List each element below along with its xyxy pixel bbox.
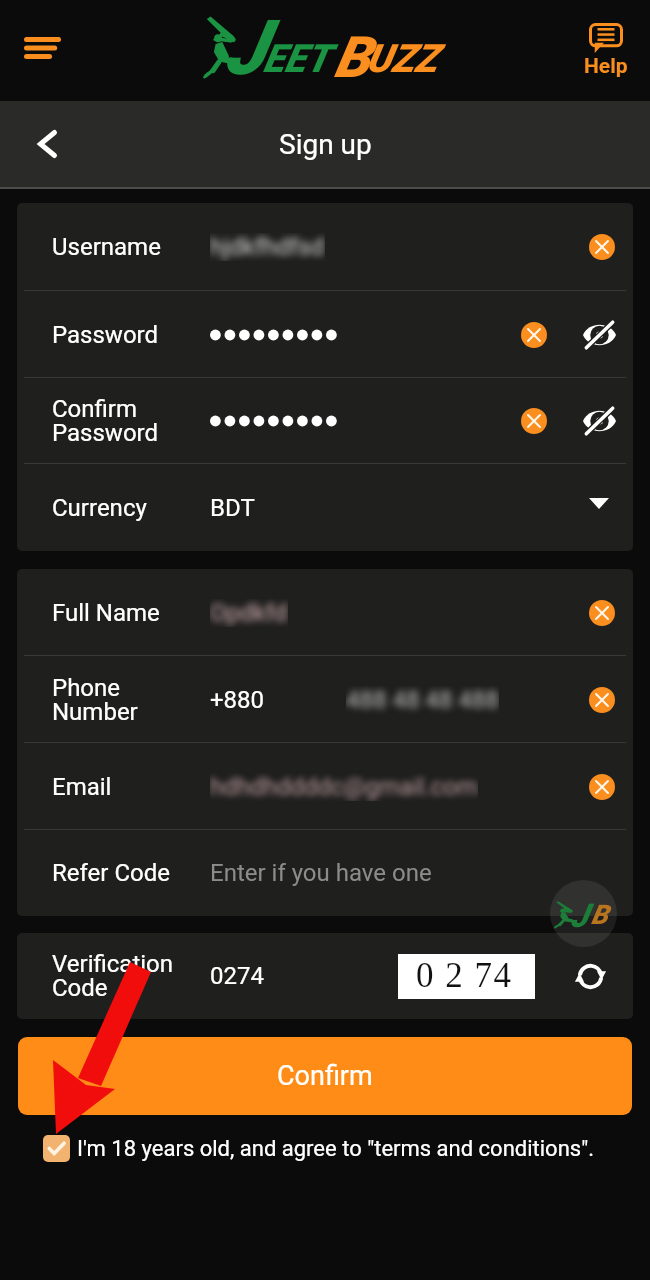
- staticText: hjdkfhdfsd: [210, 233, 325, 261]
- button[interactable]: Verification Code: [17, 933, 633, 1019]
- button[interactable]: I'm 18 years old, and agree to "terms an…: [43, 1135, 650, 1162]
- staticText: 0274: [210, 962, 264, 990]
- button[interactable]: Show password: [579, 315, 619, 355]
- staticText: Email: [52, 773, 112, 801]
- staticText: UZZ: [366, 36, 438, 82]
- button[interactable]: Clear: [517, 404, 551, 438]
- staticText: Opdkfd: [210, 599, 288, 627]
- staticText: Refer Code: [52, 859, 170, 887]
- staticText: hdhdhddddc@gmail.com: [210, 773, 478, 801]
- button[interactable]: Refresh code: [569, 955, 611, 997]
- staticText: B: [591, 899, 608, 931]
- staticText: Password: [52, 321, 159, 349]
- staticText: EET: [263, 36, 330, 82]
- staticText: Username: [52, 233, 161, 261]
- staticText: Phone Number: [52, 674, 138, 726]
- button[interactable]: Full Name: [17, 569, 633, 656]
- staticText: Confirm Password: [52, 395, 159, 447]
- button[interactable]: Menu: [14, 25, 66, 77]
- staticText: +880: [210, 686, 265, 714]
- button[interactable]: Confirm Password: [17, 378, 633, 464]
- staticText: Help: [584, 54, 628, 79]
- button[interactable]: Clear: [517, 318, 551, 352]
- button[interactable]: JeetBuzz: [550, 880, 617, 947]
- staticText: Sign up: [279, 128, 372, 161]
- button[interactable]: Currency: [17, 464, 633, 551]
- button[interactable]: Clear: [585, 596, 619, 630]
- button[interactable]: Username: [17, 203, 633, 291]
- staticText: Enter if you have one: [210, 859, 432, 887]
- staticText: 0 2 74: [416, 956, 513, 995]
- button[interactable]: Show password: [579, 401, 619, 441]
- staticText: J: [570, 896, 588, 935]
- staticText: Currency: [52, 494, 147, 522]
- staticText: 488 48 48 488: [346, 686, 499, 714]
- staticText: Verification Code: [52, 950, 174, 1002]
- button[interactable]: Phone Number: [17, 656, 633, 743]
- staticText: B: [334, 24, 370, 91]
- staticText: Confirm: [277, 1060, 373, 1092]
- button[interactable]: Clear: [585, 683, 619, 717]
- button[interactable]: Select currency: [577, 486, 621, 530]
- staticText: BDT: [210, 494, 255, 522]
- staticText: J: [224, 3, 266, 92]
- button[interactable]: Help: [584, 23, 628, 79]
- staticText: I'm 18 years old, and agree to "terms an…: [77, 1136, 594, 1162]
- button[interactable]: Refer Code: [17, 830, 633, 916]
- button[interactable]: Confirm: [18, 1037, 632, 1115]
- button[interactable]: Clear: [585, 770, 619, 804]
- button[interactable]: Password: [17, 291, 633, 378]
- button[interactable]: Back: [16, 118, 68, 170]
- staticText: Full Name: [52, 599, 160, 627]
- button[interactable]: Clear: [585, 230, 619, 264]
- button[interactable]: Email: [17, 743, 633, 830]
